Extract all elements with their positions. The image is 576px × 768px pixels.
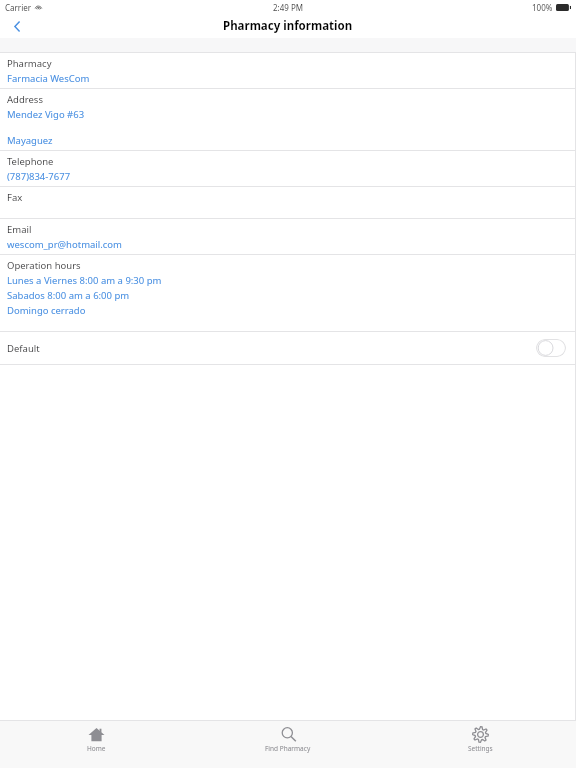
staticText: Carrier — [5, 2, 32, 13]
staticText: Pharmacy — [7, 57, 52, 70]
staticText: Farmacia WesCom — [7, 72, 90, 85]
button[interactable]: Default toggle — [536, 339, 566, 357]
staticText: (787)834-7677 — [7, 170, 71, 183]
staticText: Sabados 8:00 am a 6:00 pm — [7, 289, 130, 302]
button[interactable]: Email — [0, 219, 576, 254]
staticText: Default — [7, 342, 40, 355]
button[interactable]: Find Pharmacy — [192, 721, 384, 768]
staticText: Address — [7, 93, 43, 106]
button[interactable]: Default — [0, 332, 576, 364]
staticText: Operation hours — [7, 259, 81, 272]
button[interactable]: Settings — [384, 721, 576, 768]
staticText: Domingo cerrado — [7, 304, 86, 317]
button[interactable]: Fax — [0, 187, 576, 218]
staticText: Lunes a Viernes 8:00 am a 9:30 pm — [7, 274, 162, 287]
staticText: Settings — [468, 744, 493, 753]
button[interactable]: Telephone — [0, 151, 576, 186]
staticText: Email — [7, 223, 32, 236]
button[interactable]: Pharmacy — [0, 53, 576, 88]
button[interactable]: Home — [0, 721, 192, 768]
staticText: 2:49 PM — [273, 2, 304, 13]
button[interactable]: Operation hours — [0, 255, 576, 331]
staticText: Mayaguez — [7, 134, 53, 147]
staticText: Home — [87, 744, 106, 753]
staticText: Pharmacy information — [223, 18, 353, 34]
staticText: Mendez Vigo #63 — [7, 108, 85, 121]
button[interactable]: Back — [0, 14, 34, 38]
staticText: Fax — [7, 191, 23, 204]
staticText: wescom_pr@hotmail.com — [7, 238, 122, 251]
staticText: Find Pharmacy — [265, 744, 311, 753]
staticText: Telephone — [7, 155, 54, 168]
staticText: 100% — [532, 2, 553, 13]
button[interactable]: Address — [0, 89, 576, 150]
